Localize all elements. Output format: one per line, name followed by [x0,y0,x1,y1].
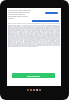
staticText: Lorem ipsum dolor sit amet, consectetur … [8,23,60,47]
staticText: Lorem ipsum dolor sit amet consectetur a… [8,9,32,19]
staticText: CONTINUE [27,74,40,77]
button[interactable]: Sign in [45,12,58,14]
button[interactable]: CONTINUE [12,73,55,78]
button[interactable]: Selected item [32,20,59,22]
